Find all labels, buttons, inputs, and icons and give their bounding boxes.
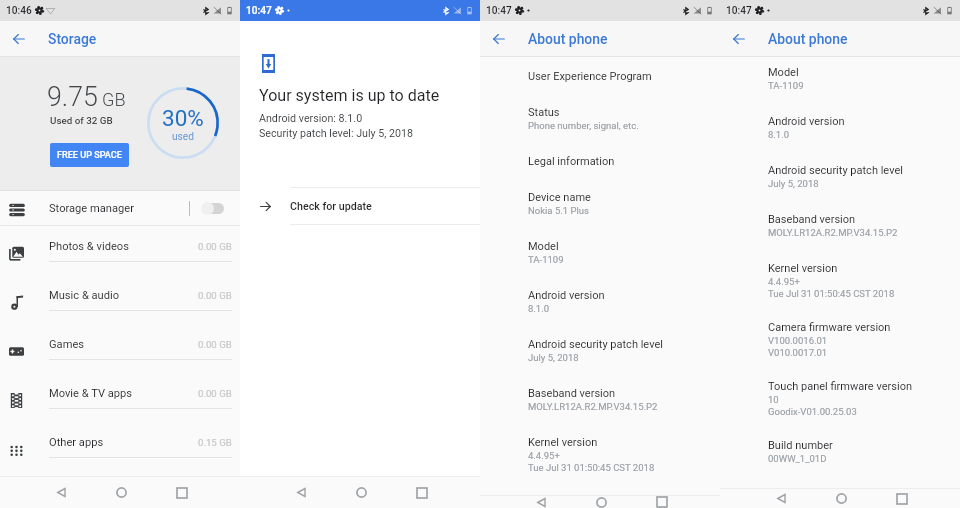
staticText: Tue Jul 31 01:50:45 CST 2018 — [528, 462, 655, 472]
button[interactable]: Android version — [528, 289, 714, 315]
staticText: 10 — [768, 394, 779, 405]
staticText: TA-1109 — [768, 80, 804, 91]
staticText: July 5, 2018 — [768, 178, 819, 189]
staticText: Status — [528, 106, 560, 119]
button[interactable]: Storage manager — [0, 191, 240, 225]
staticText: Build number — [768, 439, 833, 452]
button[interactable]: Android security patch level — [528, 338, 714, 364]
button[interactable]: Back — [525, 496, 557, 508]
button[interactable]: Storage manager toggle — [201, 202, 224, 215]
staticText: Baseband version — [768, 213, 856, 226]
button[interactable]: Home — [825, 489, 857, 508]
staticText: Used of 32 GB — [50, 115, 113, 126]
button[interactable]: Music & audio — [0, 275, 240, 324]
button[interactable]: Model — [768, 66, 954, 92]
staticText: Model — [768, 66, 799, 79]
staticText: Goodix-V01.00.25.03 — [768, 406, 857, 416]
staticText: used — [172, 131, 194, 143]
staticText: Storage — [48, 31, 97, 47]
staticText: July 5, 2018 — [528, 352, 579, 363]
staticText: Kernel version — [528, 436, 598, 449]
button[interactable]: Touch panel firmware version — [768, 380, 954, 416]
staticText: Phone number, signal, etc. — [528, 120, 639, 131]
staticText: 0.00 GB — [198, 241, 232, 252]
button[interactable]: Recents — [646, 496, 678, 508]
button[interactable]: User Experience Program — [528, 70, 714, 83]
button[interactable]: Recents — [886, 489, 918, 508]
staticText: 8.1.0 — [528, 303, 550, 314]
staticText: User Experience Program — [528, 70, 652, 83]
staticText: Android version — [528, 289, 605, 302]
button[interactable]: Android version — [768, 115, 954, 141]
staticText: Your system is up to date — [259, 86, 440, 105]
staticText: 4.4.95+ — [768, 276, 800, 287]
staticText: Android security patch level — [768, 164, 903, 177]
button[interactable]: Kernel version — [768, 262, 954, 298]
button[interactable]: Check for update — [240, 187, 480, 225]
button[interactable]: Navigate up — [0, 21, 38, 57]
button[interactable]: Back — [285, 477, 317, 508]
button[interactable]: Baseband version — [768, 213, 954, 239]
staticText: FREE UP SPACE — [57, 150, 122, 161]
staticText: Legal information — [528, 155, 615, 168]
staticText: 4.4.95+ — [528, 450, 560, 461]
staticText: Touch panel firmware version — [768, 380, 913, 393]
staticText: Music & audio — [49, 289, 120, 302]
staticText: 0.15 GB — [198, 437, 232, 448]
staticText: About phone — [768, 31, 848, 47]
staticText: Android version: 8.1.0 — [259, 112, 363, 125]
staticText: 0.00 GB — [198, 290, 232, 301]
staticText: About phone — [528, 31, 608, 47]
staticText: TA-1109 — [528, 254, 564, 265]
staticText: 00WW_1_01D — [768, 453, 827, 464]
staticText: Check for update — [290, 200, 372, 213]
staticText: V100.0016.01 — [768, 335, 828, 346]
button[interactable]: Camera firmware version — [768, 321, 954, 357]
staticText: V010.0017.01 — [768, 347, 828, 357]
staticText: Kernel version — [768, 262, 838, 275]
button[interactable]: Baseband version — [528, 387, 714, 413]
staticText: Security patch level: July 5, 2018 — [259, 127, 414, 140]
staticText: MOLY.LR12A.R2.MP.V34.15.P2 — [768, 227, 898, 238]
button[interactable]: Recents — [406, 477, 438, 508]
staticText: 9.75 — [47, 81, 98, 112]
button[interactable]: Navigate up — [720, 21, 758, 57]
button[interactable]: Status — [528, 106, 714, 132]
button[interactable]: Kernel version — [528, 436, 714, 472]
staticText: 30% — [162, 105, 204, 131]
button[interactable]: Home — [585, 496, 617, 508]
staticText: 10:47 — [726, 5, 752, 17]
staticText: Baseband version — [528, 387, 616, 400]
button[interactable]: Home — [345, 477, 377, 508]
button[interactable]: Model — [528, 240, 714, 266]
staticText: Tue Jul 31 01:50:45 CST 2018 — [768, 288, 895, 298]
button[interactable]: Back — [45, 477, 77, 508]
button[interactable]: Movie & TV apps — [0, 373, 240, 422]
button[interactable]: Android security patch level — [768, 164, 954, 190]
button[interactable]: Other apps — [0, 422, 240, 471]
button[interactable]: Build number — [768, 439, 954, 465]
staticText: 0.00 GB — [198, 388, 232, 399]
button[interactable]: Navigate up — [480, 21, 518, 57]
button[interactable]: FREE UP SPACE — [50, 143, 129, 167]
button[interactable]: Photos & videos — [0, 226, 240, 275]
staticText: Android security patch level — [528, 338, 663, 351]
staticText: GB — [102, 89, 126, 110]
button[interactable]: Back — [765, 489, 797, 508]
button[interactable]: Legal information — [528, 155, 714, 168]
button[interactable]: Games — [0, 324, 240, 373]
staticText: MOLY.LR12A.R2.MP.V34.15.P2 — [528, 401, 658, 412]
staticText: Nokia 5.1 Plus — [528, 205, 589, 216]
staticText: 10:47 — [246, 5, 272, 17]
staticText: Storage manager — [49, 202, 134, 215]
staticText: 10:46 — [6, 5, 32, 17]
button[interactable]: Recents — [166, 477, 198, 508]
staticText: 8.1.0 — [768, 129, 790, 140]
staticText: Movie & TV apps — [49, 387, 133, 400]
staticText: Camera firmware version — [768, 321, 891, 334]
button[interactable]: Home — [105, 477, 137, 508]
staticText: 0.00 GB — [198, 339, 232, 350]
button[interactable]: Device name — [528, 191, 714, 217]
staticText: Other apps — [49, 436, 104, 449]
staticText: 10:47 — [486, 5, 512, 17]
